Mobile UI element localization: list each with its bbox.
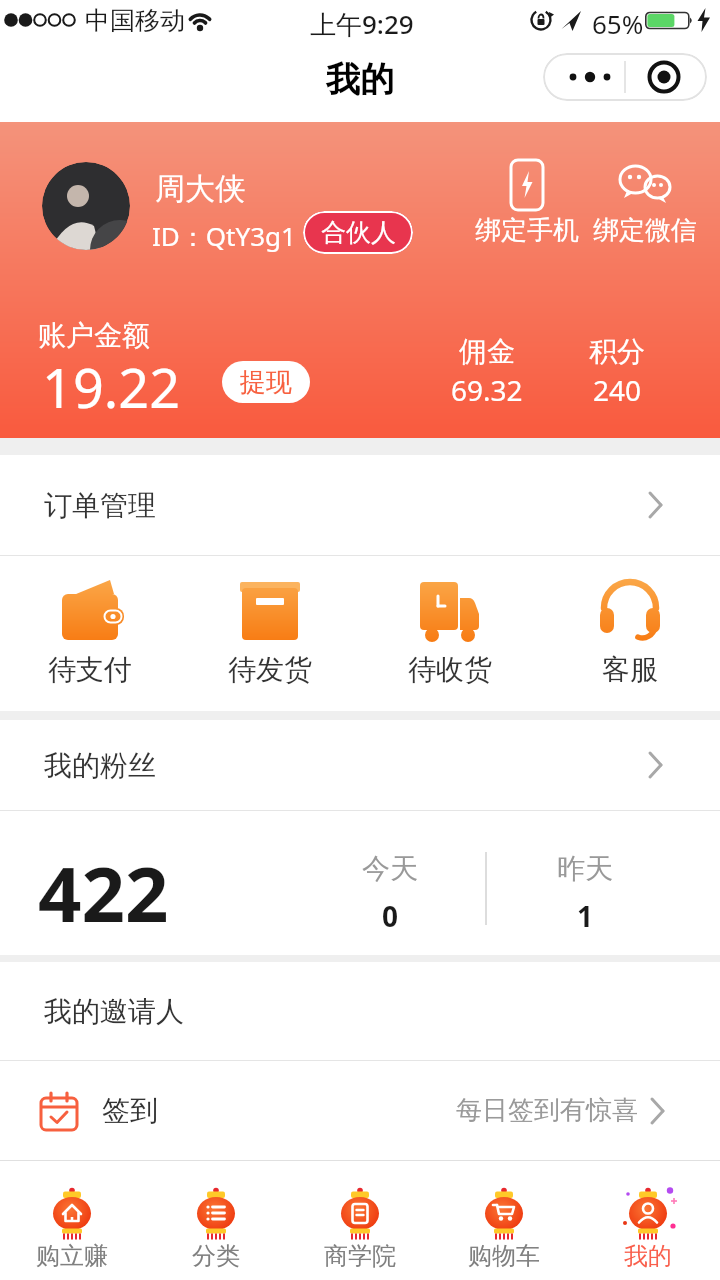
staticText: 分类 [192,1241,240,1271]
staticText: 19.22 [42,350,181,424]
button[interactable]: 提现 [222,361,310,403]
staticText: 积分 [589,334,645,369]
button[interactable]: 我的邀请人 [0,962,720,1060]
button[interactable]: 绑定微信 [585,158,705,247]
staticText: 昨天 [557,851,613,886]
staticText: 商学院 [324,1241,396,1271]
button[interactable]: 待支付 [0,556,180,711]
staticText: ID：QtY3g1 [152,218,296,254]
button[interactable]: 订单管理 [0,455,720,555]
staticText: 购立赚 [36,1241,108,1271]
staticText: 待发货 [228,652,312,687]
button[interactable]: 客服 [540,556,720,711]
staticText: 签到 [102,1093,158,1128]
staticText: 我的粉丝 [44,748,156,783]
staticText: 提现 [240,366,292,399]
button[interactable]: 我的粉丝 [0,720,720,810]
staticText: 69.32 [451,371,523,409]
staticText: 0 [382,897,399,935]
button[interactable]: 购立赚 [0,1161,144,1280]
staticText: 待收货 [408,652,492,687]
button[interactable]: 我的 [576,1161,720,1280]
staticText: 我的 [326,58,394,101]
staticText: 购物车 [468,1241,540,1271]
button[interactable]: 签到 [0,1061,720,1160]
staticText: 周大侠 [155,170,245,208]
button[interactable]: 待发货 [180,556,360,711]
button[interactable]: 绑定手机 [467,158,587,247]
staticText: 65% [592,6,644,41]
button[interactable] [543,53,707,101]
staticText: 240 [593,371,642,409]
staticText: 客服 [602,652,658,687]
staticText: 合伙人 [321,217,396,248]
staticText: 每日签到有惊喜 [456,1094,638,1127]
button[interactable]: 分类 [144,1161,288,1280]
staticText: 1 [577,897,594,935]
staticText: 绑定微信 [593,214,697,247]
button[interactable]: 待收货 [360,556,540,711]
staticText: 422 [38,841,169,945]
staticText: 我的邀请人 [44,994,184,1029]
staticText: 中国移动 [85,5,185,36]
staticText: 上午9:29 [310,6,414,42]
staticText: 今天 [362,851,418,886]
staticText: 订单管理 [44,488,156,523]
staticText: 我的 [624,1241,672,1271]
staticText: 佣金 [459,334,515,369]
button[interactable]: 购物车 [432,1161,576,1280]
button[interactable]: 合伙人 [303,211,413,254]
staticText: 绑定手机 [475,214,579,247]
staticText: 待支付 [48,652,132,687]
staticText: 账户金额 [38,318,150,353]
button[interactable]: 商学院 [288,1161,432,1280]
